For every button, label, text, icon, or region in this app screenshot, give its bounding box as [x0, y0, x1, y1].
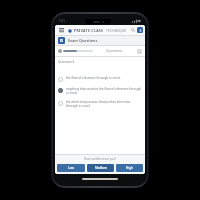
button[interactable]: Menu: [57, 26, 65, 34]
staticText: the electrical pressure that pushes elec…: [66, 100, 131, 104]
button[interactable]: the electrical pressure that pushes elec…: [58, 100, 142, 108]
button[interactable]: Search: [130, 27, 136, 33]
staticText: Exam Questions: [68, 38, 98, 43]
staticText: the flow of electrons through a circuit: [66, 76, 121, 80]
button[interactable]: Medium: [87, 164, 114, 172]
staticText: Medium: [95, 166, 107, 170]
staticText: Question 4: [58, 60, 75, 64]
staticText: PRIVATE CLASS: [74, 28, 104, 33]
staticText: TECHNIQUE: [106, 29, 127, 33]
button[interactable]: Low: [57, 164, 85, 172]
button[interactable]: the flow of electrons through a circuit: [58, 76, 142, 82]
button[interactable]: anything that restricts the flow of elec…: [58, 87, 142, 95]
button[interactable]: Account: [137, 27, 143, 33]
staticText: a circuit: [66, 91, 78, 95]
button[interactable]: Exam Questions: [58, 36, 142, 45]
staticText: 4 questions: [106, 49, 123, 53]
button[interactable]: Progress start: [58, 49, 62, 53]
staticText: anything that restricts the flow of elec…: [66, 87, 142, 91]
staticText: through a circuit: [66, 104, 90, 108]
staticText: How confident are you?: [84, 157, 116, 161]
button[interactable]: Options: [137, 49, 142, 54]
staticText: 9:41: [59, 19, 65, 23]
staticText: High: [126, 166, 133, 170]
staticText: Low: [68, 166, 74, 170]
button[interactable]: High: [116, 164, 143, 172]
